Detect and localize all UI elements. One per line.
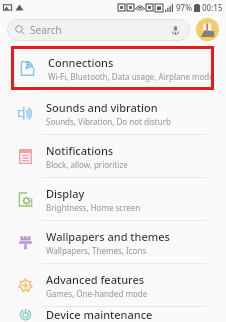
button[interactable]: Account bbox=[196, 18, 219, 41]
staticText: Games, One-handed mode bbox=[46, 288, 148, 299]
staticText: Search bbox=[30, 23, 62, 37]
staticText: Sounds, Vibration, Do not disturb bbox=[46, 116, 171, 127]
staticText: Brightness, Home screen bbox=[46, 202, 141, 213]
staticText: Connections bbox=[48, 55, 114, 70]
button[interactable]: Wallpapers and themes bbox=[0, 221, 226, 263]
button[interactable]: Sounds and vibration bbox=[0, 92, 226, 134]
button[interactable]: Display bbox=[0, 178, 226, 220]
staticText: Device maintenance bbox=[46, 307, 153, 322]
button[interactable]: Device maintenance bbox=[0, 307, 226, 322]
staticText: Wi-Fi, Bluetooth, Data usage, Airplane m… bbox=[48, 71, 214, 82]
staticText: Sounds and vibration bbox=[46, 100, 158, 115]
staticText: Display bbox=[46, 186, 85, 201]
staticText: Advanced features bbox=[46, 272, 145, 287]
button[interactable]: Connections bbox=[11, 46, 214, 90]
staticText: Notifications bbox=[46, 143, 114, 158]
staticText: Wallpapers and themes bbox=[46, 229, 170, 244]
button[interactable]: Notifications bbox=[0, 135, 226, 177]
staticText: Wallpapers, Themes, Icons bbox=[46, 245, 147, 256]
button[interactable]: Advanced features bbox=[0, 264, 226, 306]
button[interactable]: Search bbox=[7, 19, 190, 41]
staticText: Block, allow, prioritize bbox=[46, 159, 128, 170]
staticText: 97% bbox=[176, 2, 192, 13]
staticText: 00:15 bbox=[202, 2, 223, 13]
button[interactable]: Voice search bbox=[168, 23, 182, 37]
